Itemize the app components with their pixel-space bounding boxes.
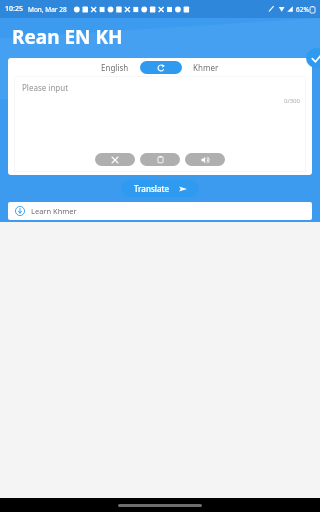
staticText: 0/300 bbox=[284, 97, 300, 105]
button[interactable]: Learn Khmer bbox=[8, 202, 312, 220]
staticText: Rean EN KH bbox=[12, 24, 123, 50]
button[interactable]: Khmer bbox=[189, 62, 223, 73]
button[interactable]: Paste bbox=[140, 153, 180, 166]
staticText: Learn Khmer bbox=[31, 206, 77, 216]
button[interactable]: Clear bbox=[95, 153, 135, 166]
staticText: Khmer bbox=[193, 62, 219, 73]
staticText: 10:25 bbox=[5, 4, 23, 14]
staticText: Translate bbox=[134, 183, 170, 194]
button[interactable]: Speak bbox=[185, 153, 225, 166]
button[interactable]: Home gesture bbox=[118, 504, 202, 507]
button[interactable]: Please input bbox=[14, 76, 306, 172]
staticText: Mon, Mar 28 bbox=[28, 5, 67, 14]
button[interactable]: Translate bbox=[121, 180, 199, 197]
button[interactable]: Confirm bbox=[306, 48, 320, 68]
button[interactable]: Swap languages bbox=[140, 61, 182, 74]
button[interactable]: English bbox=[97, 62, 133, 73]
staticText: Please input bbox=[22, 82, 69, 93]
staticText: English bbox=[101, 62, 129, 73]
staticText: 62% bbox=[296, 5, 309, 14]
